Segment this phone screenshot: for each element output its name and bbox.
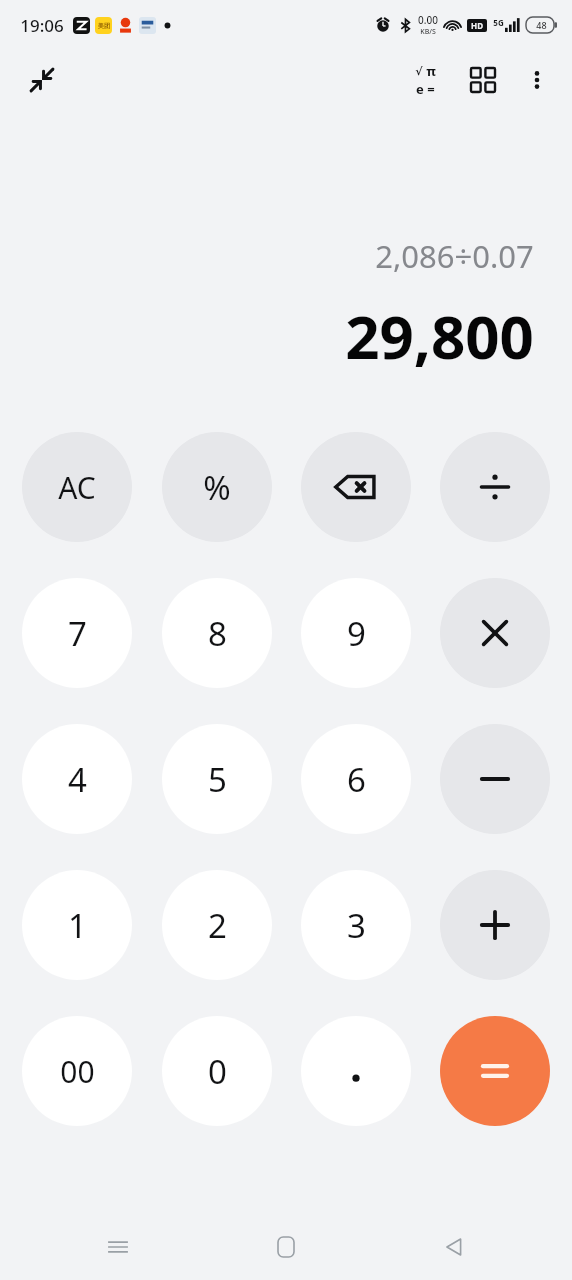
staticText: 3 (347, 903, 366, 948)
staticText: 2,086÷0.07 (375, 235, 534, 277)
button[interactable]: Collapse (18, 56, 66, 104)
button[interactable]: 3 (301, 870, 411, 980)
staticText: HD (471, 20, 483, 31)
staticText: 美团 (98, 22, 110, 30)
button[interactable]: History (458, 55, 508, 105)
staticText: 6 (347, 757, 366, 802)
staticText: = (427, 80, 435, 98)
button[interactable]: 8 (162, 578, 272, 688)
button[interactable]: 1 (22, 870, 132, 980)
staticText: 29,800 (345, 295, 534, 377)
button[interactable]: 00 (22, 1016, 132, 1126)
staticText: KB/S (420, 27, 436, 37)
button[interactable] (440, 870, 550, 980)
button[interactable]: Recent apps (90, 1219, 146, 1275)
staticText: 7 (68, 611, 87, 656)
staticText: 0 (208, 1049, 227, 1094)
staticText: π (426, 62, 436, 80)
button[interactable]: 9 (301, 578, 411, 688)
staticText: AC (58, 467, 96, 508)
button[interactable]: Home (258, 1219, 314, 1275)
button[interactable] (440, 432, 550, 542)
staticText: √ (415, 65, 423, 78)
button[interactable]: More options (512, 55, 562, 105)
staticText: 48 (536, 19, 547, 31)
staticText: 8 (208, 611, 227, 656)
button[interactable]: Back (426, 1219, 482, 1275)
staticText: 00 (60, 1051, 95, 1092)
staticText: 1 (68, 903, 87, 948)
staticText: 2 (208, 903, 227, 948)
button[interactable]: 7 (22, 578, 132, 688)
staticText: 4 (68, 757, 87, 802)
button[interactable] (301, 1016, 411, 1126)
button[interactable]: Backspace (301, 432, 411, 542)
button[interactable]: 2 (162, 870, 272, 980)
staticText: 9 (347, 611, 366, 656)
button[interactable]: 0 (162, 1016, 272, 1126)
button[interactable]: AC (22, 432, 132, 542)
button[interactable] (440, 578, 550, 688)
staticText: % (203, 465, 231, 510)
button[interactable] (440, 724, 550, 834)
button[interactable]: 6 (301, 724, 411, 834)
staticText: 5G (493, 17, 504, 28)
button[interactable]: % (162, 432, 272, 542)
button[interactable]: 4 (22, 724, 132, 834)
button[interactable] (440, 1016, 550, 1126)
button[interactable]: Scientific mode (400, 55, 450, 105)
staticText: 5 (208, 757, 227, 802)
staticText: 0.00 (418, 13, 438, 27)
button[interactable]: 5 (162, 724, 272, 834)
staticText: 19:06 (20, 14, 64, 37)
staticText: e (416, 80, 424, 98)
